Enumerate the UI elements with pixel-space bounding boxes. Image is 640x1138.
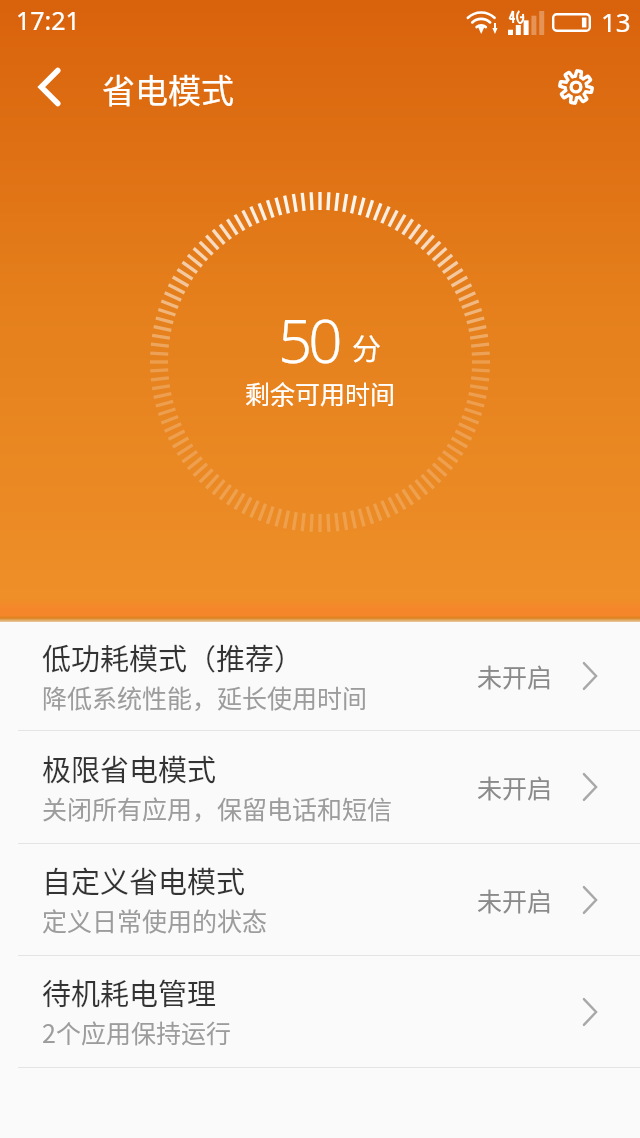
staticText: 省电模式 — [102, 65, 234, 113]
staticText: 2个应用保持运行 — [42, 1014, 231, 1050]
button[interactable]: Settings — [540, 51, 612, 123]
staticText: 定义日常使用的状态 — [42, 902, 268, 938]
staticText: 50 — [278, 299, 339, 381]
staticText: 17:21 — [16, 3, 80, 37]
staticText: 降低系统性能，延长使用时间 — [42, 679, 368, 715]
staticText: 剩余可用时间 — [245, 375, 396, 411]
staticText: 关闭所有应用，保留电话和短信 — [42, 790, 393, 826]
staticText: 未开启 — [477, 658, 553, 694]
staticText: 低功耗模式（推荐） — [42, 636, 304, 678]
button[interactable]: Back — [13, 51, 85, 123]
staticText: 待机耗电管理 — [42, 971, 217, 1013]
staticText: 分 — [352, 326, 382, 368]
staticText: 13 — [601, 4, 631, 39]
button[interactable]: 自定义省电模式 — [0, 844, 640, 955]
button[interactable]: 待机耗电管理 — [0, 956, 640, 1067]
button[interactable]: 极限省电模式 — [0, 731, 640, 843]
staticText: 未开启 — [477, 769, 553, 805]
button[interactable]: 低功耗模式（推荐） — [0, 622, 640, 730]
staticText: 极限省电模式 — [42, 747, 217, 789]
staticText: 自定义省电模式 — [42, 859, 246, 901]
staticText: 未开启 — [477, 882, 553, 918]
